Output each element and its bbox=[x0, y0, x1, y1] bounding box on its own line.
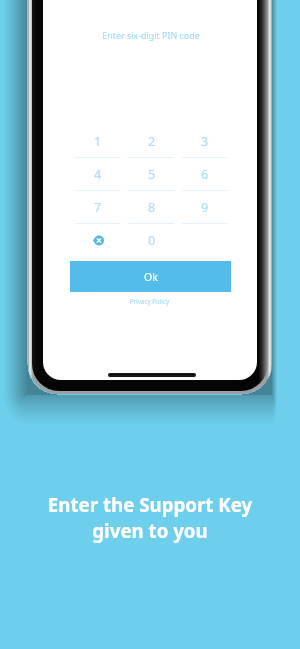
button[interactable]: Delete bbox=[71, 224, 125, 257]
button[interactable]: 5 bbox=[125, 158, 178, 191]
staticText: 7 bbox=[94, 199, 102, 216]
button[interactable]: Ok bbox=[70, 261, 231, 292]
staticText: 0 bbox=[148, 232, 156, 249]
staticText: Ok bbox=[144, 270, 158, 284]
staticText: 3 bbox=[201, 133, 209, 150]
staticText: 6 bbox=[201, 166, 209, 183]
staticText: Enter six-digit PIN code bbox=[44, 29, 257, 41]
staticText: 8 bbox=[148, 199, 156, 216]
staticText: 2 bbox=[148, 133, 156, 150]
button[interactable]: 8 bbox=[125, 191, 178, 224]
button[interactable]: 2 bbox=[125, 125, 178, 158]
other: Delete bbox=[93, 235, 104, 246]
staticText: Enter the Support Key given to you bbox=[0, 492, 300, 544]
button[interactable]: 9 bbox=[178, 191, 231, 224]
staticText: 9 bbox=[201, 199, 209, 216]
button[interactable]: 6 bbox=[178, 158, 231, 191]
button[interactable]: 7 bbox=[71, 191, 125, 224]
staticText: 1 bbox=[94, 133, 102, 150]
button[interactable]: 0 bbox=[125, 224, 178, 257]
staticText: 4 bbox=[94, 166, 102, 183]
staticText: 5 bbox=[148, 166, 156, 183]
button[interactable]: Privacy Policy bbox=[130, 297, 170, 305]
button[interactable]: 4 bbox=[71, 158, 125, 191]
button[interactable]: 3 bbox=[178, 125, 231, 158]
button[interactable]: 1 bbox=[71, 125, 125, 158]
